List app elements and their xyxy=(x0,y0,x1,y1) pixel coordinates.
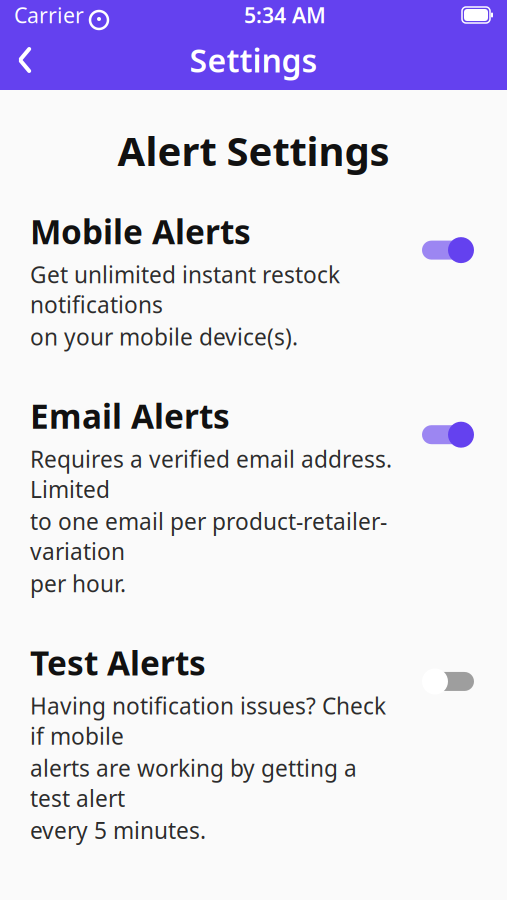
staticText: Carrier xyxy=(14,1,84,29)
staticText: on your mobile device(s). xyxy=(30,322,298,352)
staticText: Email Alerts xyxy=(30,394,230,438)
staticText: Settings xyxy=(189,39,317,81)
button[interactable]: Email Alerts xyxy=(0,394,507,598)
staticText: Mobile Alerts xyxy=(30,209,251,253)
staticText: alerts are working by getting a test ale… xyxy=(30,753,357,813)
button[interactable]: Test Alerts xyxy=(0,640,507,845)
button[interactable]: Mobile Alerts xyxy=(0,209,507,352)
staticText: Get unlimited instant restock notificati… xyxy=(30,259,340,320)
staticText: 5:34 AM xyxy=(244,1,326,29)
staticText: per hour. xyxy=(30,568,126,598)
button[interactable]: Back xyxy=(0,33,50,87)
staticText: every 5 minutes. xyxy=(30,815,206,845)
staticText: Requires a verified email address. Limit… xyxy=(30,444,392,504)
staticText: to one email per product-retailer-variat… xyxy=(30,506,387,566)
staticText: Having notification issues? Check if mob… xyxy=(30,691,386,751)
staticText: Alert Settings xyxy=(117,124,389,177)
staticText: Test Alerts xyxy=(30,640,206,685)
